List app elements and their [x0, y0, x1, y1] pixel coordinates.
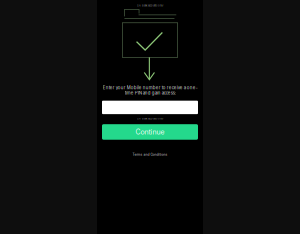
staticText: Enter your Mobile number to receive a on…	[102, 85, 197, 96]
button[interactable]: Terms and Conditions	[132, 153, 167, 157]
staticText: SA Bank accounts only	[137, 117, 163, 120]
button[interactable]: Continue	[102, 124, 198, 140]
staticText: Continue	[135, 128, 164, 136]
staticText: Terms and Conditions	[132, 153, 167, 157]
staticText: SA Bank accounts only	[137, 4, 163, 7]
